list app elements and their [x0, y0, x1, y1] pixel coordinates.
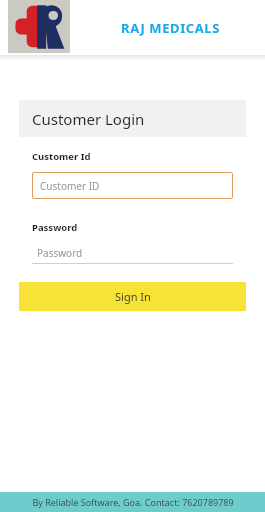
staticText: By Reliable Software, Goa. Contact: 7620…: [32, 496, 234, 508]
button[interactable]: Sign In: [19, 282, 246, 311]
staticText: Customer Login: [32, 109, 145, 129]
staticText: Sign In: [115, 289, 151, 304]
staticText: Password: [37, 246, 83, 260]
button[interactable]: Customer ID: [32, 172, 233, 199]
other: Raj Medicals logo: [8, 0, 70, 53]
button[interactable]: Password: [32, 243, 233, 264]
staticText: Password: [32, 221, 78, 234]
staticText: Customer ID: [40, 179, 100, 193]
staticText: Customer Id: [32, 150, 91, 163]
staticText: RAJ MEDICALS: [121, 19, 220, 37]
